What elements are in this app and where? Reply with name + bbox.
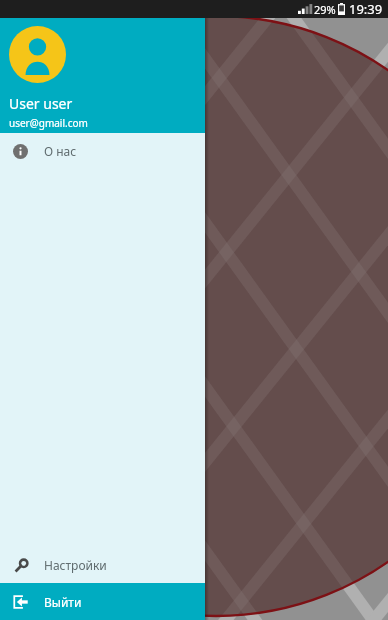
staticText: 29% [314, 2, 336, 17]
other: Выйти [13, 594, 29, 610]
button[interactable]: User user [0, 18, 205, 133]
button[interactable]: Настройки [0, 547, 205, 583]
other: Настройки [13, 558, 29, 574]
button[interactable]: Выйти [0, 583, 205, 620]
staticText: 19:39 [349, 0, 383, 18]
staticText: Выйти [44, 594, 82, 610]
button[interactable]: About [0, 133, 205, 169]
staticText: User user [9, 94, 73, 113]
staticText: О нас [44, 143, 77, 159]
staticText: Настройки [44, 557, 107, 573]
other: About [13, 144, 28, 159]
staticText: user@gmail.com [9, 116, 88, 130]
